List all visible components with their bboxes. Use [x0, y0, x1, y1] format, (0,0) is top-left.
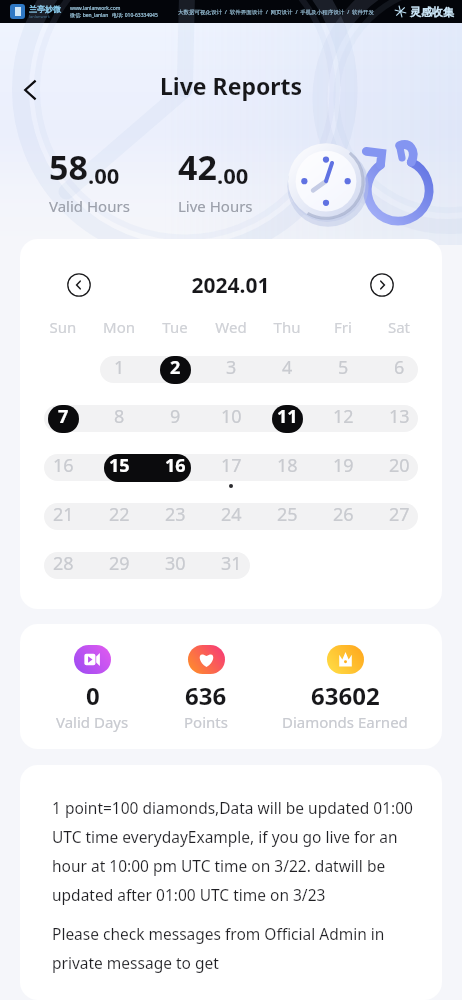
- staticText: 23: [165, 502, 186, 527]
- staticText: lanlanwork: [29, 14, 50, 19]
- staticText: 7: [58, 404, 69, 429]
- staticText: 31: [221, 551, 242, 576]
- staticText: 12: [333, 404, 354, 429]
- staticText: 2024.01: [96, 271, 365, 300]
- staticText: 63602: [311, 679, 380, 712]
- staticText: 26: [333, 502, 354, 527]
- staticText: 15: [109, 453, 130, 478]
- button[interactable]: Next month: [365, 268, 399, 302]
- button[interactable]: 8: [91, 394, 147, 438]
- staticText: 1 point=100 diamonds,Data will be update…: [52, 797, 428, 905]
- staticText: 29: [109, 551, 130, 576]
- button[interactable]: 31: [203, 541, 259, 585]
- staticText: 11: [277, 404, 298, 429]
- button[interactable]: 13: [371, 394, 427, 438]
- staticText: Mon: [91, 317, 147, 337]
- staticText: Valid Hours: [49, 196, 130, 216]
- button[interactable]: Previous month: [62, 268, 96, 302]
- staticText: .00: [88, 160, 120, 190]
- staticText: 兰亭妙微: [29, 4, 61, 14]
- staticText: 58: [49, 144, 88, 190]
- staticText: 10: [221, 404, 242, 429]
- staticText: 42: [178, 144, 217, 190]
- staticText: 27: [389, 502, 410, 527]
- button[interactable]: 63602: [282, 645, 408, 732]
- button[interactable]: 16: [147, 443, 203, 487]
- button[interactable]: 28: [35, 541, 91, 585]
- button[interactable]: 15: [91, 443, 147, 487]
- staticText: 17: [221, 453, 242, 478]
- staticText: Thu: [259, 317, 315, 337]
- button[interactable]: 26: [315, 492, 371, 536]
- button[interactable]: 7: [35, 394, 91, 438]
- staticText: 灵感收集: [410, 5, 454, 19]
- staticText: 微信: ben_lanlan 电话: 010-63334945: [70, 12, 158, 19]
- button[interactable]: 24: [203, 492, 259, 536]
- button[interactable]: 30: [147, 541, 203, 585]
- staticText: Fri: [315, 317, 371, 337]
- staticText: 24: [221, 502, 242, 527]
- staticText: 1: [114, 355, 125, 380]
- staticText: 18: [277, 453, 298, 478]
- staticText: 16: [53, 453, 74, 478]
- button[interactable]: 23: [147, 492, 203, 536]
- button[interactable]: 3: [203, 345, 259, 389]
- button[interactable]: 11: [259, 394, 315, 438]
- staticText: Live Reports: [160, 70, 303, 101]
- button[interactable]: Back: [8, 68, 52, 112]
- staticText: 6: [394, 355, 405, 380]
- button[interactable]: 29: [91, 541, 147, 585]
- button[interactable]: 5: [315, 345, 371, 389]
- button[interactable]: 9: [147, 394, 203, 438]
- button[interactable]: 636: [184, 645, 228, 732]
- staticText: 25: [277, 502, 298, 527]
- staticText: www.lanlanwork.com: [70, 5, 121, 12]
- button[interactable]: 17: [203, 443, 259, 487]
- staticText: 9: [170, 404, 181, 429]
- staticText: Please check messages from Official Admi…: [52, 923, 428, 973]
- staticText: 19: [333, 453, 354, 478]
- staticText: Sun: [35, 317, 91, 337]
- staticText: Valid Days: [56, 712, 129, 732]
- button[interactable]: 16: [35, 443, 91, 487]
- staticText: 大数据可视化设计 / 软件界面设计 / 网页设计 / 手机及小程序设计 / 软件…: [178, 8, 375, 16]
- button[interactable]: 2: [147, 345, 203, 389]
- button[interactable]: 1: [91, 345, 147, 389]
- staticText: 5: [338, 355, 349, 380]
- staticText: Diamonds Earned: [282, 712, 408, 732]
- button[interactable]: 25: [259, 492, 315, 536]
- staticText: 21: [53, 502, 74, 527]
- staticText: 4: [282, 355, 293, 380]
- staticText: 0: [86, 679, 100, 712]
- button[interactable]: 21: [35, 492, 91, 536]
- staticText: 28: [53, 551, 74, 576]
- staticText: .00: [217, 160, 249, 190]
- staticText: 20: [389, 453, 410, 478]
- staticText: 16: [165, 453, 186, 478]
- button[interactable]: 18: [259, 443, 315, 487]
- button[interactable]: 27: [371, 492, 427, 536]
- button[interactable]: 0: [56, 645, 129, 732]
- staticText: 8: [114, 404, 125, 429]
- staticText: 13: [389, 404, 410, 429]
- staticText: Wed: [203, 317, 259, 337]
- button[interactable]: 19: [315, 443, 371, 487]
- button[interactable]: 22: [91, 492, 147, 536]
- staticText: Sat: [371, 317, 427, 337]
- button[interactable]: 4: [259, 345, 315, 389]
- staticText: 22: [109, 502, 130, 527]
- button[interactable]: 6: [371, 345, 427, 389]
- staticText: 30: [165, 551, 186, 576]
- button[interactable]: 12: [315, 394, 371, 438]
- button[interactable]: 10: [203, 394, 259, 438]
- staticText: Points: [184, 712, 228, 732]
- button[interactable]: 20: [371, 443, 427, 487]
- staticText: Tue: [147, 317, 203, 337]
- staticText: Live Hours: [178, 196, 253, 216]
- staticText: 2: [170, 355, 181, 380]
- staticText: 636: [185, 679, 227, 712]
